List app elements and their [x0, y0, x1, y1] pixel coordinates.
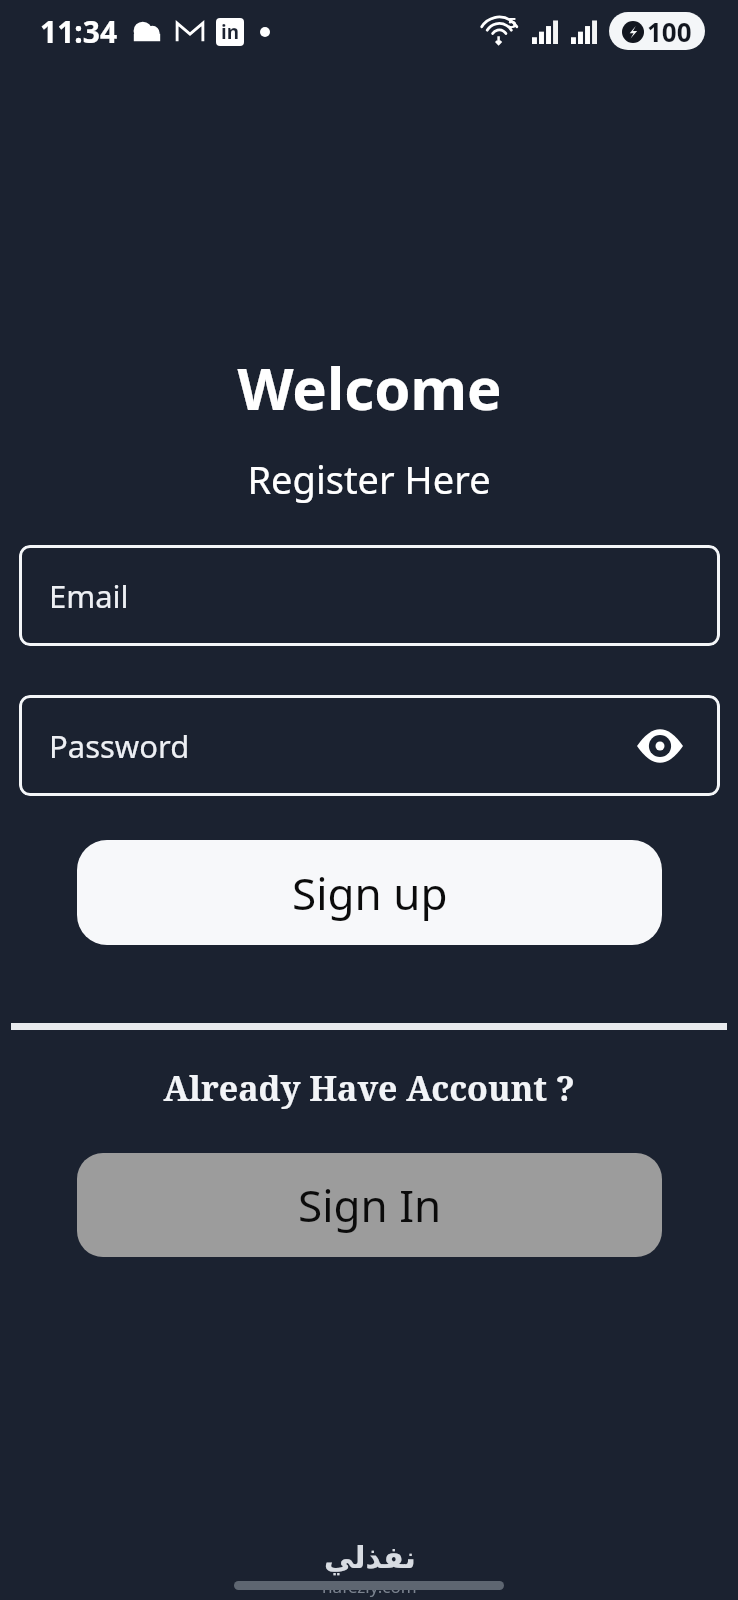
staticText: Sign up [292, 863, 448, 923]
staticText: in [221, 19, 240, 45]
staticText: nafezly.com [322, 1575, 417, 1598]
button[interactable]: Sign In [77, 1153, 662, 1257]
staticText: Welcome [237, 348, 502, 427]
staticText: Email [49, 575, 129, 617]
staticText: 5 [508, 12, 517, 32]
staticText: Password [49, 725, 190, 767]
staticText: نفذلي [324, 1540, 416, 1575]
button[interactable]: Sign up [77, 840, 662, 945]
staticText: 100 [647, 14, 692, 49]
staticText: Already Have Account ? [163, 1065, 575, 1111]
staticText: Sign In [298, 1175, 442, 1235]
button[interactable]: Password [19, 695, 720, 796]
staticText: 11:34 [40, 11, 118, 52]
button[interactable]: Show password [633, 719, 687, 773]
staticText: Register Here [247, 453, 491, 505]
button[interactable]: Email [19, 545, 720, 646]
